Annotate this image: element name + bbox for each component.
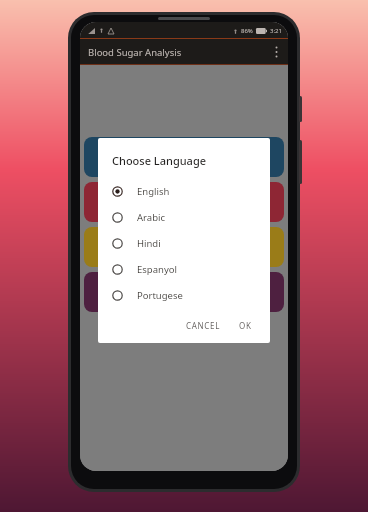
button[interactable] [84,272,284,312]
button[interactable] [84,227,284,267]
staticText: Arabic [137,211,165,224]
staticText: OK [239,320,252,331]
button[interactable]: More options [264,40,288,64]
staticText: 86% [241,27,253,35]
staticText: Choose Language [112,153,207,168]
staticText: Espanyol [137,263,177,276]
button[interactable]: Hindi [112,230,258,256]
staticText: CANCEL [186,320,221,331]
button[interactable]: Arabic [112,204,258,230]
button[interactable]: OK [233,316,258,335]
staticText: Portugese [137,289,183,302]
staticText: Blood Sugar Analysis [88,46,182,59]
button[interactable]: English [112,178,258,204]
button[interactable] [84,137,284,177]
button[interactable]: CANCEL [180,316,227,335]
button[interactable] [84,182,284,222]
staticText: Hindi [137,237,161,250]
staticText: English [137,185,170,198]
button[interactable]: Portugese [112,282,258,308]
button[interactable]: Espanyol [112,256,258,282]
staticText: 3:21 [270,27,282,35]
